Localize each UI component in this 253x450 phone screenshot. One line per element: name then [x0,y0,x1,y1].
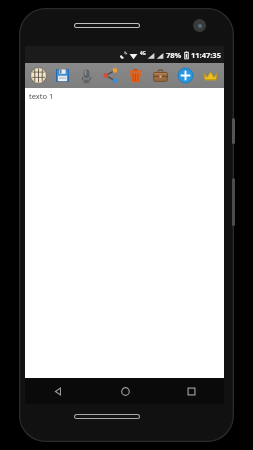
button[interactable]: Delete [123,63,148,88]
button[interactable]: Save [50,63,74,88]
staticText: 4G [140,50,146,56]
staticText: 78% [166,50,182,60]
button[interactable]: Menu [26,63,50,88]
staticText: 11:47:35 [191,50,221,60]
button[interactable]: Recent apps [158,378,224,404]
button[interactable]: Add [173,63,198,88]
staticText: texto 1 [29,91,54,101]
button[interactable]: Share [98,63,123,88]
button[interactable]: Premium [198,63,223,88]
button[interactable]: Briefcase [148,63,173,88]
button[interactable]: Back [25,378,92,404]
button[interactable]: Record audio [74,63,98,88]
button[interactable]: Home [92,378,158,404]
